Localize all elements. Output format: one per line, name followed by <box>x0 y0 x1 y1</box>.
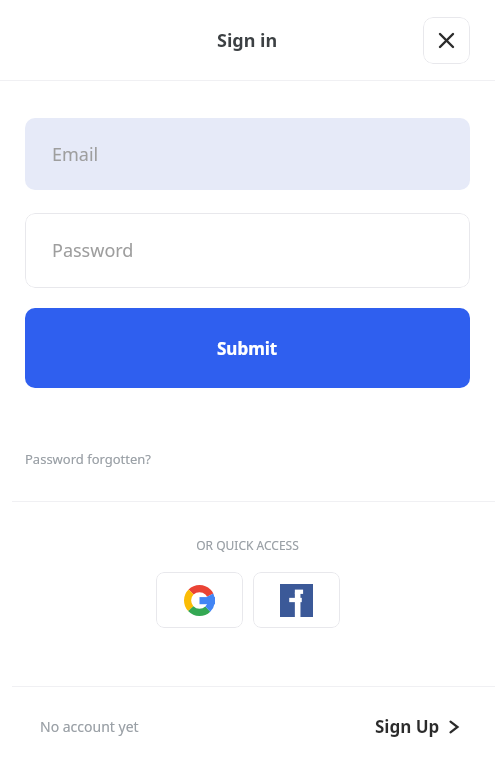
staticText: Email <box>52 142 99 167</box>
button[interactable]: Email <box>25 118 470 190</box>
staticText: OR QUICK ACCESS <box>0 537 495 553</box>
staticText: No account yet <box>40 717 139 736</box>
button[interactable]: Password forgotten? <box>25 446 152 472</box>
button[interactable]: Sign in with Google <box>156 572 243 628</box>
button[interactable]: Submit <box>25 308 470 388</box>
button[interactable]: Password <box>25 213 470 288</box>
staticText: Password forgotten? <box>25 450 152 468</box>
button[interactable]: Sign Up <box>369 709 465 744</box>
button[interactable]: Close <box>423 17 470 64</box>
staticText: Password <box>52 238 134 263</box>
staticText: Sign Up <box>375 715 440 738</box>
staticText: Submit <box>217 337 278 360</box>
button[interactable]: Sign in with Facebook <box>253 572 340 628</box>
staticText: Sign in <box>217 28 278 53</box>
